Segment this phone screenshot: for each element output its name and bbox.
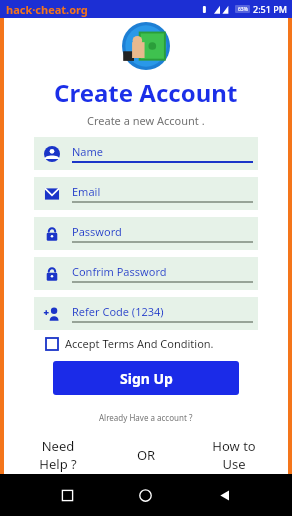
staticText: Sign Up xyxy=(120,369,173,388)
staticText: Refer Code (1234) xyxy=(72,304,164,319)
button[interactable]: Already Have a account ? xyxy=(99,412,193,423)
staticText: Create a new Account . xyxy=(87,113,205,128)
staticText: hack·cheat.org xyxy=(6,2,88,17)
staticText: Password xyxy=(72,224,122,239)
button[interactable]: How to Use xyxy=(190,437,278,473)
staticText: Name xyxy=(72,144,104,159)
button[interactable]: Confrim Password xyxy=(34,257,258,290)
staticText: OR xyxy=(102,446,190,464)
staticText: Need Help ? xyxy=(39,437,77,473)
button[interactable]: Refer Code (1234) xyxy=(34,297,258,330)
staticText: Accept Terms And Condition. xyxy=(65,336,214,351)
button[interactable]: Accept Terms And Condition. xyxy=(45,336,288,351)
staticText: Email xyxy=(72,184,101,199)
staticText: Confrim Password xyxy=(72,264,167,279)
staticText: How to Use xyxy=(212,437,256,473)
staticText: Create Account xyxy=(54,76,238,109)
button[interactable]: Sign Up xyxy=(53,361,239,395)
staticText: 63% xyxy=(238,6,248,13)
button[interactable]: Home xyxy=(106,474,185,516)
button[interactable]: Recent apps xyxy=(28,474,106,516)
staticText: 2:51 PM xyxy=(253,3,287,15)
button[interactable]: Email xyxy=(34,177,258,210)
button[interactable]: Password xyxy=(34,217,258,250)
button[interactable]: Name xyxy=(34,137,258,170)
button[interactable]: Back xyxy=(185,474,264,516)
button[interactable]: Need Help ? xyxy=(14,437,102,473)
